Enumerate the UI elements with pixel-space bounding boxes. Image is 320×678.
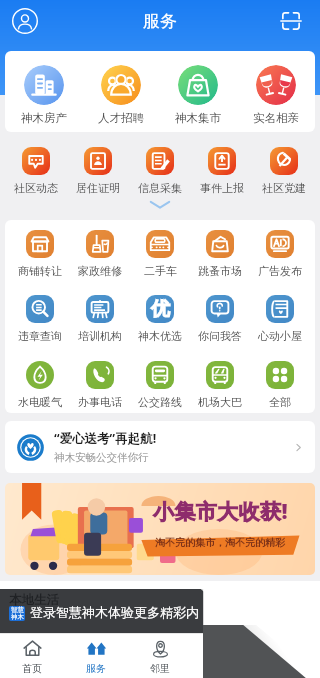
button[interactable]: 事件上报 [191, 147, 253, 195]
staticText: 社区动态 [14, 181, 58, 195]
button[interactable]: 小集市大收获! [5, 483, 315, 575]
staticText: 家政维修 [78, 264, 122, 278]
staticText: 神木房产 [21, 111, 67, 125]
button[interactable]: 首页 [0, 634, 64, 678]
button[interactable]: 实名相亲 [237, 51, 315, 132]
staticText: 神木安畅公交伴你行 [54, 451, 149, 464]
staticText: 本地生活 [9, 592, 59, 608]
button[interactable]: 神木集市 [159, 51, 237, 132]
staticText: 商铺转让 [18, 264, 62, 278]
staticText: 二手车 [144, 264, 177, 278]
staticText: 实名相亲 [253, 111, 299, 125]
staticText: 首页 [22, 662, 42, 675]
button[interactable]: 广告发布 [250, 230, 310, 278]
button[interactable]: 办事电话 [70, 361, 130, 409]
staticText: 培训机构 [78, 329, 122, 343]
staticText: 广告发布 [258, 264, 302, 278]
button[interactable]: 社区党建 [253, 147, 315, 195]
button[interactable]: “爱心送考”再起航! [5, 421, 315, 473]
staticText: 居住证明 [76, 181, 120, 195]
staticText: 淘不完的集市，淘不完的精彩 [155, 536, 285, 549]
staticText: 全部 [269, 395, 291, 409]
staticText: 我的 [278, 662, 298, 675]
button[interactable]: 心动小屋 [250, 295, 310, 343]
button[interactable]: 机场大巴 [190, 361, 250, 409]
staticText: 信息采集 [138, 181, 182, 195]
button[interactable]: 你问我答 [190, 295, 250, 343]
button[interactable]: 信息采集 [129, 147, 191, 195]
staticText: 神木集市 [175, 111, 221, 125]
staticText: 邻里 [150, 662, 170, 675]
staticText: 服务 [143, 11, 177, 32]
staticText: 公交路线 [138, 395, 182, 409]
staticText: 你问我答 [198, 329, 242, 343]
button[interactable]: 家政维修 [70, 230, 130, 278]
staticText: 优 [151, 297, 170, 321]
staticText: 社区党建 [262, 181, 306, 195]
button[interactable]: 消息 [192, 634, 256, 678]
staticText: 机场大巴 [198, 395, 242, 409]
button[interactable]: 优 [130, 295, 190, 343]
staticText: 办事电话 [78, 395, 122, 409]
staticText: 事件上报 [200, 181, 244, 195]
button[interactable]: 水电暖气 [10, 361, 70, 409]
button[interactable]: 人才招聘 [82, 51, 159, 132]
button[interactable]: 跳蚤市场 [190, 230, 250, 278]
button[interactable]: 服务 [64, 634, 128, 678]
staticText: 神木优选 [138, 329, 182, 343]
staticText: 违章查询 [18, 329, 62, 343]
button[interactable]: 二手车 [130, 230, 190, 278]
button[interactable]: 我的 [256, 634, 320, 678]
button[interactable]: Scan [280, 10, 302, 32]
button[interactable]: 社区动态 [5, 147, 67, 195]
staticText: 人才招聘 [98, 111, 144, 125]
staticText: 智慧 神木 [11, 606, 24, 621]
button[interactable]: 公交路线 [130, 361, 190, 409]
button[interactable]: 全部 [250, 361, 310, 409]
staticText: 登录智慧神木体验更多精彩内 [30, 604, 199, 620]
staticText: 小集市大收获! [153, 497, 288, 526]
button[interactable]: 神木房产 [5, 51, 82, 132]
staticText: 心动小屋 [258, 329, 302, 343]
staticText: “爱心送考”再起航! [54, 430, 157, 447]
button[interactable]: 违章查询 [10, 295, 70, 343]
staticText: 服务 [86, 662, 106, 675]
button[interactable]: 邻里 [128, 634, 192, 678]
button[interactable]: 培训机构 [70, 295, 130, 343]
button[interactable]: 居住证明 [67, 147, 129, 195]
staticText: 跳蚤市场 [198, 264, 242, 278]
button[interactable]: 商铺转让 [10, 230, 70, 278]
button[interactable]: Profile [12, 8, 38, 34]
staticText: 水电暖气 [18, 395, 62, 409]
